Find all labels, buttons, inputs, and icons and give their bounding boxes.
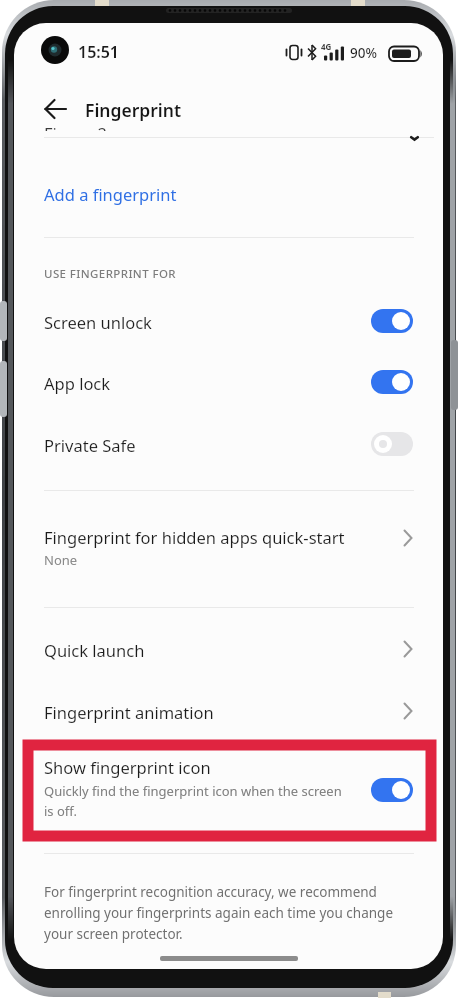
staticText: Show fingerprint icon (44, 756, 211, 778)
staticText: Screen unlock (44, 311, 152, 333)
button[interactable]: Fingerprint animation (14, 692, 443, 740)
button[interactable] (44, 98, 68, 120)
staticText: For fingerprint recognition accuracy, we… (44, 883, 394, 943)
staticText: Fingerprint (85, 98, 182, 122)
staticText: USE FINGERPRINT FOR (44, 266, 176, 282)
button[interactable]: Show fingerprint icon (28, 745, 431, 836)
button[interactable] (371, 370, 413, 394)
staticText: 90% (350, 44, 377, 62)
button[interactable]: Private Safe (14, 418, 443, 470)
staticText: App lock (44, 372, 111, 394)
button[interactable]: Fingerprint for hidden apps quick-start (14, 518, 443, 578)
staticText: Fingerprint animation (44, 701, 214, 723)
button[interactable] (371, 778, 413, 802)
staticText: None (44, 551, 78, 569)
button[interactable]: Add a fingerprint (14, 153, 443, 213)
button[interactable]: Screen unlock (14, 295, 443, 347)
staticText: Quick launch (44, 639, 145, 661)
staticText: Add a fingerprint (44, 183, 177, 205)
staticText: 15:51 (78, 41, 120, 63)
staticText: Finger 2 (44, 128, 108, 131)
button[interactable] (371, 432, 413, 456)
button[interactable]: Quick launch (14, 630, 443, 678)
staticText: Fingerprint for hidden apps quick-start (44, 526, 345, 548)
staticText: Quickly find the fingerprint icon when t… (44, 782, 342, 820)
button[interactable] (371, 309, 413, 333)
staticText: 4G (321, 41, 332, 52)
button[interactable]: App lock (14, 356, 443, 408)
staticText: Private Safe (44, 434, 136, 456)
